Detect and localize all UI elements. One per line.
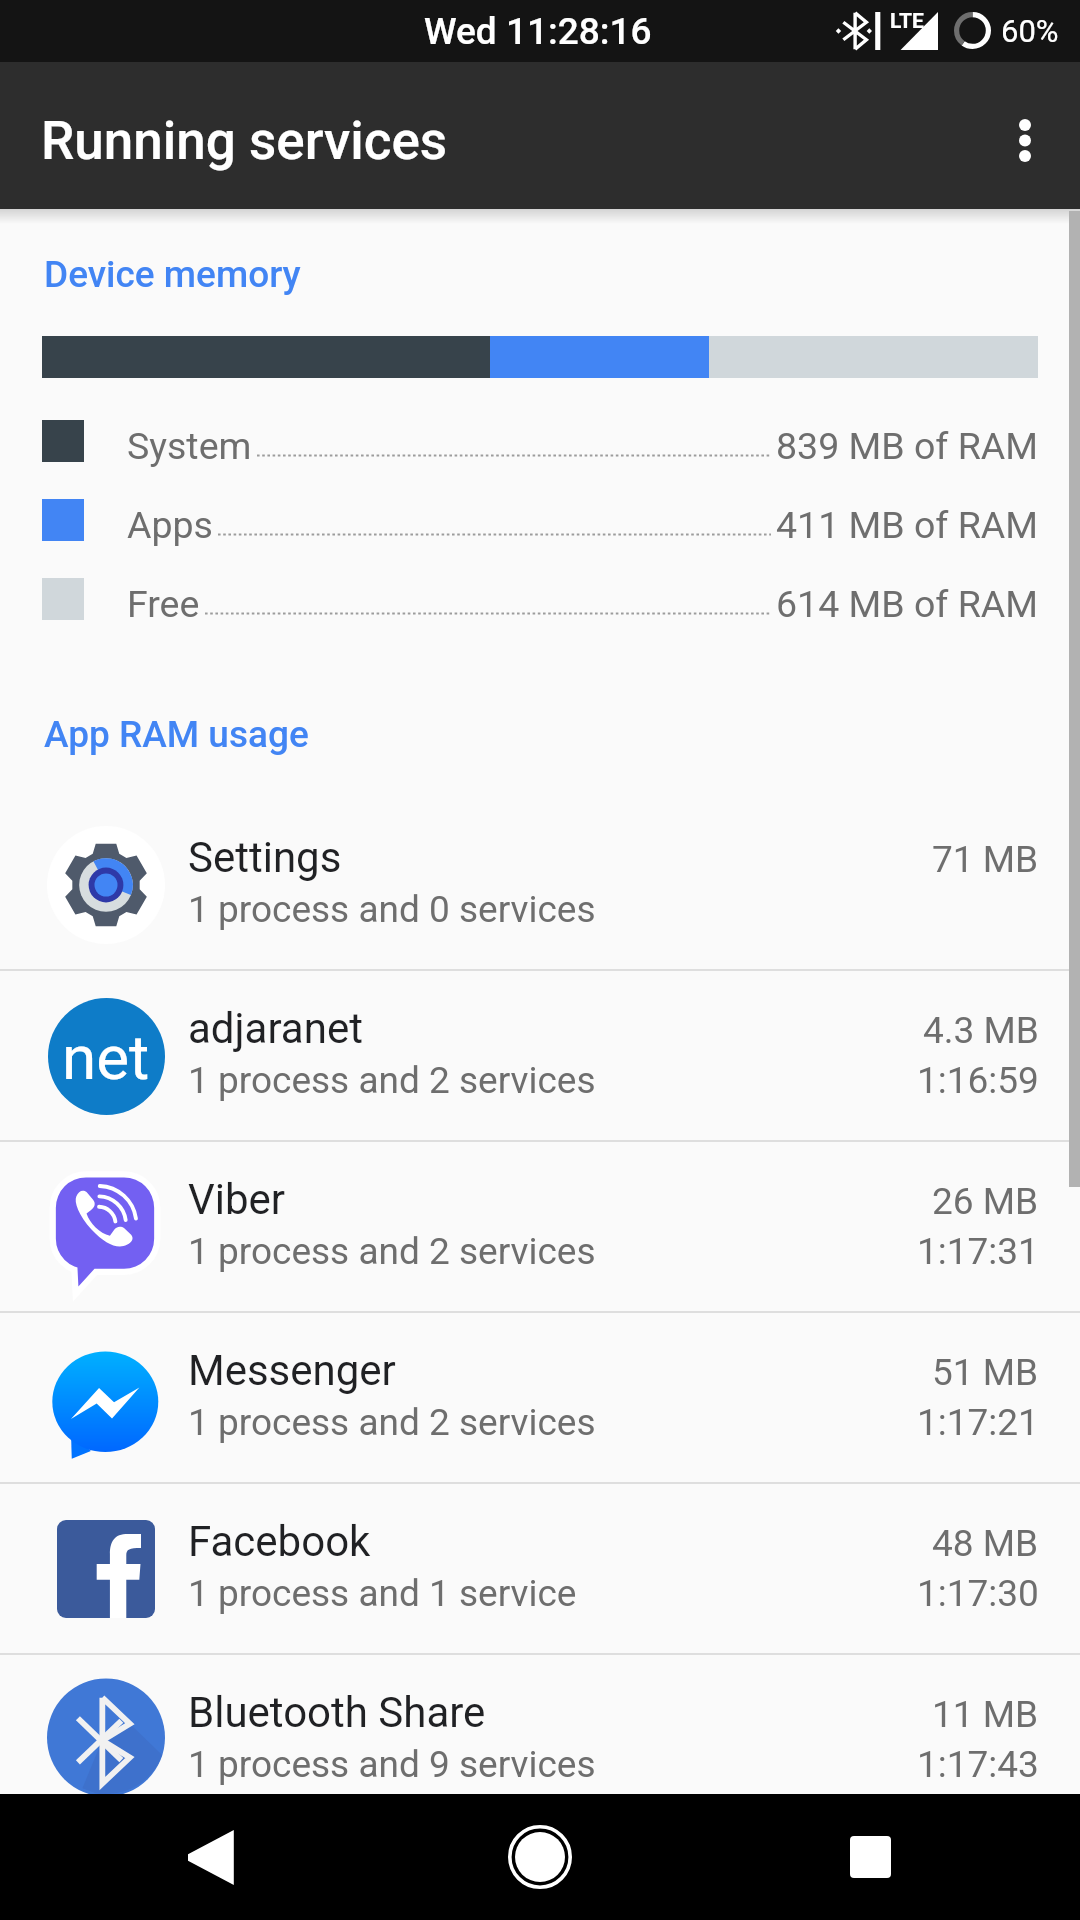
staticText: 411 MB of RAM	[776, 503, 1038, 547]
staticText: Running services	[41, 110, 448, 172]
staticText: Messenger	[188, 1346, 396, 1395]
staticText: Bluetooth Share	[188, 1688, 486, 1737]
button[interactable]: Messenger	[0, 1313, 1080, 1482]
staticText: Wed 11:28:16	[424, 10, 652, 53]
button[interactable]: Facebook	[0, 1484, 1080, 1653]
button[interactable]: Home	[450, 1794, 630, 1920]
staticText: 1 process and 1 service	[188, 1572, 577, 1615]
staticText: 1:16:59	[917, 1059, 1039, 1102]
staticText: 1:17:30	[917, 1572, 1039, 1615]
staticText: Settings	[188, 833, 342, 882]
staticText: 1:17:21	[917, 1401, 1039, 1444]
staticText: 1:17:43	[917, 1743, 1039, 1786]
staticText: adjaranet	[188, 1004, 363, 1053]
staticText: Device memory	[44, 253, 301, 296]
staticText: 1 process and 0 services	[188, 888, 596, 931]
staticText: 60%	[1001, 13, 1059, 49]
staticText: 51 MB	[932, 1351, 1039, 1394]
staticText: System	[127, 424, 252, 468]
staticText: App RAM usage	[44, 713, 309, 756]
staticText: Apps	[127, 503, 213, 547]
staticText: 11 MB	[932, 1693, 1039, 1736]
staticText: 839 MB of RAM	[776, 424, 1038, 468]
button[interactable]: Recents	[780, 1794, 960, 1920]
staticText: LTE	[890, 9, 924, 34]
staticText: 614 MB of RAM	[776, 582, 1038, 626]
button[interactable]: net	[0, 971, 1080, 1140]
staticText: 4.3 MB	[923, 1009, 1039, 1052]
staticText: Viber	[188, 1175, 286, 1224]
button[interactable]: Settings	[0, 800, 1080, 969]
button[interactable]: Viber	[0, 1142, 1080, 1311]
staticText: 48 MB	[932, 1522, 1039, 1565]
staticText: 1 process and 2 services	[188, 1401, 596, 1444]
button[interactable]: Bluetooth Share	[0, 1655, 1080, 1794]
staticText: 1 process and 2 services	[188, 1059, 596, 1102]
staticText: Facebook	[188, 1517, 371, 1566]
button[interactable]: More options	[970, 85, 1080, 195]
staticText: 26 MB	[932, 1180, 1039, 1223]
staticText: 1 process and 2 services	[188, 1230, 596, 1273]
staticText: 1:17:31	[917, 1230, 1039, 1273]
staticText: 71 MB	[932, 838, 1039, 881]
staticText: net	[62, 1021, 150, 1094]
staticText: 1 process and 9 services	[188, 1743, 596, 1786]
button[interactable]: Back	[120, 1794, 300, 1920]
staticText: Free	[127, 582, 200, 626]
